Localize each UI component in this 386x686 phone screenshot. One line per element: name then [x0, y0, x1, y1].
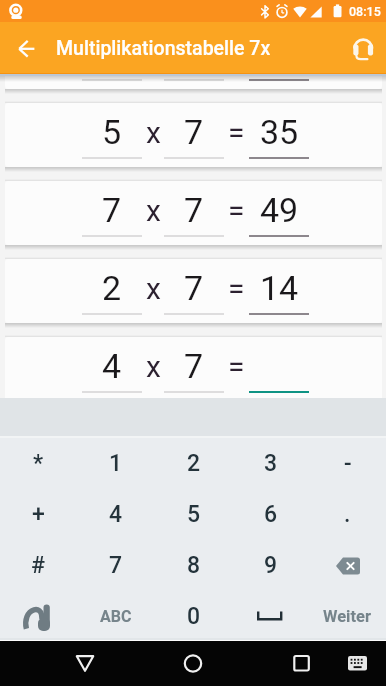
- staticText: x: [146, 115, 161, 150]
- staticText: -: [344, 450, 352, 477]
- staticText: =: [228, 115, 245, 150]
- button[interactable]: 5: [155, 489, 232, 540]
- button[interactable]: Weiter: [309, 591, 386, 642]
- staticText: 35: [260, 112, 299, 152]
- button[interactable]: 3: [5, 74, 382, 89]
- button[interactable]: [232, 591, 309, 642]
- button[interactable]: [345, 29, 381, 65]
- staticText: 4: [102, 346, 122, 386]
- staticText: 6: [264, 501, 278, 528]
- staticText: 49: [260, 190, 299, 230]
- button[interactable]: -: [309, 438, 386, 489]
- staticText: 2: [102, 268, 122, 308]
- button[interactable]: [0, 591, 77, 642]
- button[interactable]: [171, 641, 215, 686]
- staticText: 7: [102, 190, 122, 230]
- button[interactable]: +: [0, 489, 77, 540]
- button[interactable]: 5: [5, 103, 382, 167]
- staticText: 2: [187, 450, 201, 477]
- staticText: 4: [109, 501, 123, 528]
- button[interactable]: 3: [232, 438, 309, 489]
- button[interactable]: 2: [155, 438, 232, 489]
- staticText: 1: [109, 450, 123, 477]
- staticText: 7: [184, 190, 204, 230]
- staticText: ABC: [100, 607, 132, 626]
- staticText: .: [344, 501, 351, 528]
- staticText: =: [228, 349, 245, 384]
- staticText: x: [146, 271, 161, 306]
- staticText: +: [32, 501, 45, 528]
- staticText: 5: [102, 112, 122, 152]
- staticText: =: [228, 193, 245, 228]
- staticText: 8: [187, 552, 201, 579]
- button[interactable]: [340, 641, 376, 686]
- button[interactable]: [63, 641, 107, 686]
- button[interactable]: [309, 540, 386, 591]
- button[interactable]: ABC: [77, 591, 154, 642]
- button[interactable]: 9: [232, 540, 309, 591]
- staticText: Weiter: [323, 607, 372, 626]
- button[interactable]: 4: [5, 337, 382, 398]
- staticText: 08:15: [349, 4, 381, 19]
- staticText: Multiplikationstabelle 7x: [56, 37, 271, 60]
- button[interactable]: 1: [77, 438, 154, 489]
- button[interactable]: 4: [77, 489, 154, 540]
- staticText: 14: [260, 268, 299, 308]
- staticText: 7: [109, 552, 123, 579]
- button[interactable]: 6: [232, 489, 309, 540]
- staticText: 0: [187, 603, 201, 630]
- staticText: =: [228, 271, 245, 306]
- button[interactable]: 7: [77, 540, 154, 591]
- button[interactable]: #: [0, 540, 77, 591]
- staticText: x: [146, 349, 161, 384]
- staticText: 3: [264, 450, 278, 477]
- staticText: *: [33, 450, 44, 477]
- staticText: 7: [184, 112, 204, 152]
- button[interactable]: 7: [5, 181, 382, 245]
- button[interactable]: [8, 30, 44, 66]
- button[interactable]: 2: [5, 259, 382, 323]
- button[interactable]: 0: [155, 591, 232, 642]
- button[interactable]: .: [309, 489, 386, 540]
- staticText: 7: [184, 346, 204, 386]
- button[interactable]: 8: [155, 540, 232, 591]
- staticText: #: [31, 552, 46, 579]
- button[interactable]: *: [0, 438, 77, 489]
- staticText: 7: [184, 268, 204, 308]
- staticText: 5: [187, 501, 201, 528]
- button[interactable]: [279, 641, 323, 686]
- staticText: x: [146, 193, 161, 228]
- staticText: 9: [264, 552, 278, 579]
